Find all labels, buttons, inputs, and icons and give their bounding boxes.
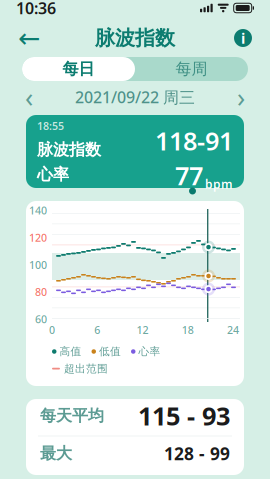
button[interactable]: Back (14, 25, 44, 51)
staticText: 24 (227, 323, 239, 337)
staticText: 120 (29, 230, 47, 245)
staticText: ‹ (25, 79, 33, 115)
staticText: 18:55 (37, 119, 64, 133)
staticText: 高值 (59, 345, 81, 358)
staticText: 超出范围 (64, 362, 108, 375)
button[interactable]: Information (230, 25, 256, 51)
staticText: 最大 (40, 444, 72, 463)
staticText: 脉波指数 (37, 140, 101, 160)
staticText: 每天平均 (40, 406, 104, 425)
staticText: 每周 (175, 59, 207, 79)
staticText: i (241, 28, 245, 48)
staticText: › (237, 79, 245, 115)
staticText: 低值 (99, 345, 121, 358)
staticText: 80 (35, 285, 47, 299)
staticText: 100 (29, 258, 47, 272)
staticText: 6 (94, 323, 100, 337)
staticText: 118-91 (155, 124, 233, 157)
button[interactable]: Previous day (12, 84, 46, 110)
staticText: 2021/09/22 周三 (75, 86, 195, 108)
button[interactable]: 每天平均 (26, 396, 244, 436)
staticText: 10:36 (16, 0, 56, 19)
staticText: 心率 (138, 345, 160, 358)
staticText: 每日 (62, 59, 94, 79)
staticText: 0 (49, 323, 55, 337)
button[interactable]: 最大 (26, 436, 244, 470)
staticText: 18 (182, 323, 194, 337)
staticText: bpm (205, 176, 233, 192)
staticText: 心率 (37, 165, 69, 184)
staticText: 脉波指数 (95, 26, 175, 50)
button[interactable]: 每周 (135, 57, 248, 81)
staticText: 140 (29, 203, 47, 217)
staticText: 77 (175, 158, 203, 192)
staticText: ← (18, 23, 40, 53)
staticText: 115 - 93 (138, 399, 230, 432)
staticText: 128 - 99 (164, 442, 230, 465)
staticText: 12 (136, 323, 148, 337)
button[interactable]: Next day (224, 84, 258, 110)
button[interactable]: 每日 (22, 57, 135, 81)
staticText: 60 (35, 312, 47, 326)
